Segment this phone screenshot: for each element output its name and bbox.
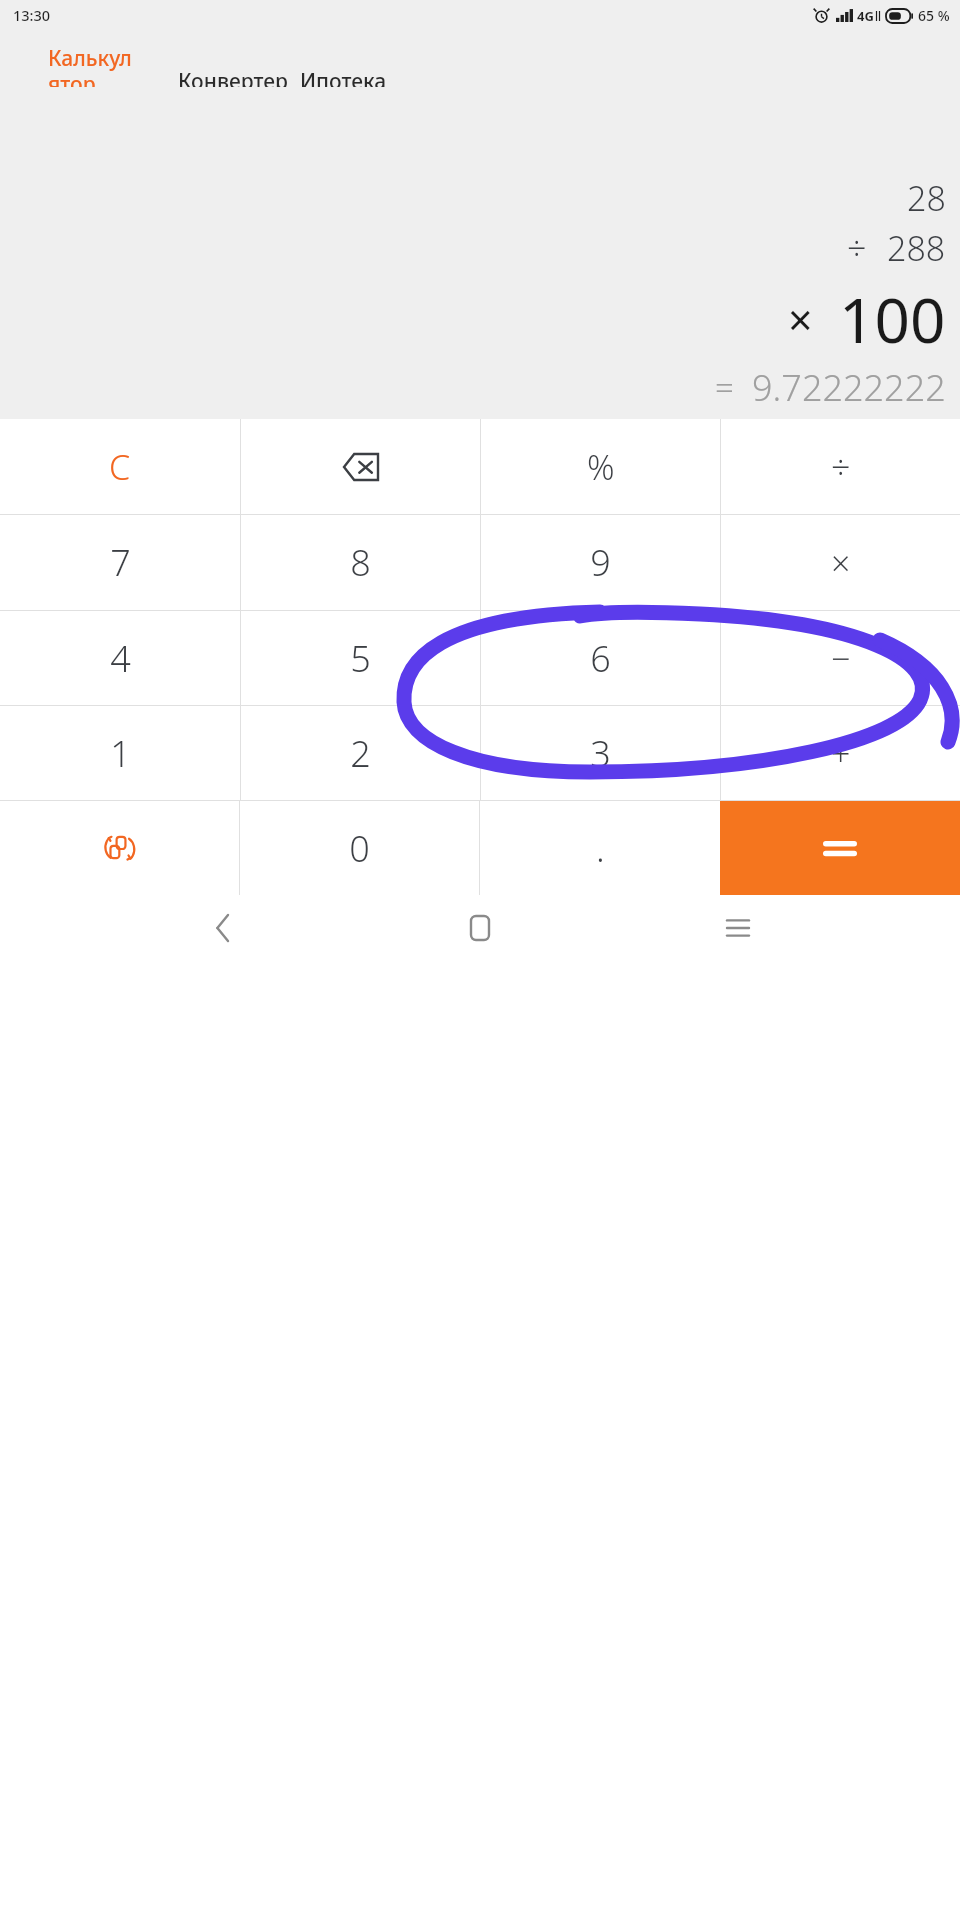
button[interactable]: Plus xyxy=(721,706,960,800)
staticText: 5 xyxy=(350,634,371,683)
staticText: 100 xyxy=(839,277,946,361)
staticText: 13:30 xyxy=(13,5,51,25)
staticText: 8 xyxy=(350,538,371,587)
button[interactable]: 0 xyxy=(240,801,479,895)
button[interactable]: 7 xyxy=(0,515,240,610)
staticText: = xyxy=(715,365,734,410)
button[interactable]: 3 xyxy=(481,706,720,800)
staticText: Ипотека xyxy=(300,67,387,96)
button[interactable]: Ипотека xyxy=(300,67,387,96)
button[interactable]: Home xyxy=(445,895,515,960)
staticText: Конвертер xyxy=(178,67,288,96)
staticText: + xyxy=(831,730,851,776)
staticText: 288 xyxy=(887,225,946,271)
staticText: 65 % xyxy=(918,6,950,25)
staticText: × xyxy=(831,540,851,586)
staticText: Калькулятор xyxy=(48,44,138,98)
staticText: − xyxy=(831,635,851,681)
staticText: 3 xyxy=(590,729,611,778)
staticText: . xyxy=(596,824,605,873)
button[interactable]: Switch layout xyxy=(0,801,239,895)
button[interactable]: 9 xyxy=(481,515,720,610)
staticText: 4 xyxy=(110,634,131,683)
button[interactable]: Recents xyxy=(703,895,773,960)
button[interactable]: Minus xyxy=(721,611,960,705)
staticText: % xyxy=(587,444,615,490)
button[interactable]: Equals xyxy=(720,801,960,895)
button[interactable]: Clear xyxy=(0,419,240,514)
button[interactable]: Конвертер xyxy=(178,67,288,96)
button[interactable]: Multiply xyxy=(721,515,960,610)
staticText: 1 xyxy=(110,729,131,778)
staticText: 6 xyxy=(590,634,611,683)
button[interactable]: Divide xyxy=(721,419,960,514)
button[interactable]: 1 xyxy=(0,706,240,800)
staticText: 4G xyxy=(857,7,874,25)
staticText: C xyxy=(109,444,131,490)
button[interactable]: 5 xyxy=(241,611,480,705)
staticText: 9 xyxy=(590,538,611,587)
staticText: 0 xyxy=(349,824,370,873)
button[interactable]: Калькулятор xyxy=(48,44,138,98)
button[interactable]: 8 xyxy=(241,515,480,610)
button[interactable]: Percent xyxy=(481,419,720,514)
staticText: ÷ xyxy=(831,444,851,490)
button[interactable]: Back xyxy=(188,895,258,960)
button[interactable]: 2 xyxy=(241,706,480,800)
staticText: ÷ xyxy=(847,225,867,271)
staticText: 7 xyxy=(110,538,131,587)
staticText: × xyxy=(788,290,813,349)
staticText: 9.72222222 xyxy=(752,363,946,412)
button[interactable]: Backspace xyxy=(241,419,480,514)
button[interactable]: 6 xyxy=(481,611,720,705)
button[interactable]: . xyxy=(480,801,720,895)
staticText: 2 xyxy=(350,729,371,778)
button[interactable]: 4 xyxy=(0,611,240,705)
staticText: 28 xyxy=(907,175,946,221)
